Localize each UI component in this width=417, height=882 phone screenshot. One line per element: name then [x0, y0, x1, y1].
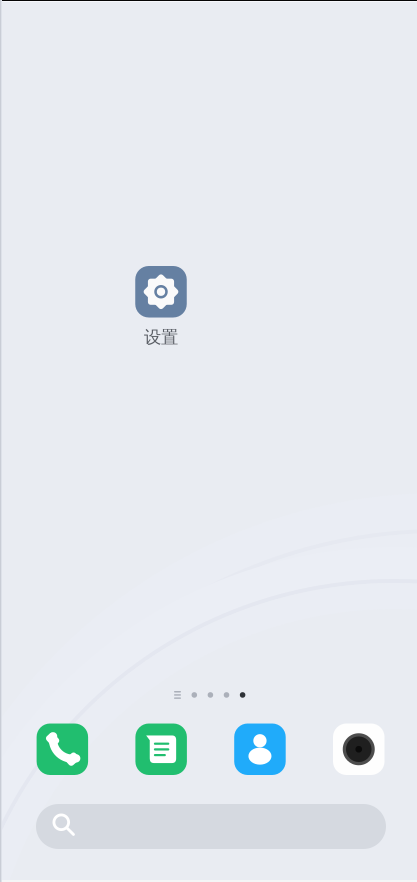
button[interactable]: 设置 — [111, 266, 210, 348]
button[interactable]: Phone — [37, 723, 88, 775]
button[interactable]: Search — [36, 804, 386, 849]
button[interactable]: Contacts — [234, 723, 286, 775]
staticText: 设置 — [144, 326, 178, 348]
button[interactable]: Messages — [135, 723, 187, 775]
button[interactable]: Camera — [333, 723, 384, 775]
